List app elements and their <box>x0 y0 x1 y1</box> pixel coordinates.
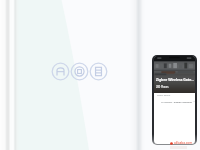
button[interactable]: Power switch <box>70 62 89 81</box>
staticText: 200 Pieces <box>156 85 169 88</box>
staticText: Select device <box>157 94 171 97</box>
button[interactable]: 1x Socket - Zigbee Gateway <box>154 98 195 104</box>
button[interactable]: Light switch <box>51 62 70 81</box>
staticText: alibaba.com <box>174 141 193 145</box>
staticText: Zigbee Wireless Gate... <box>156 77 195 82</box>
button[interactable]: Scene switch <box>89 62 108 81</box>
staticText: 1x Socket - Zigbee Gateway <box>161 100 193 103</box>
